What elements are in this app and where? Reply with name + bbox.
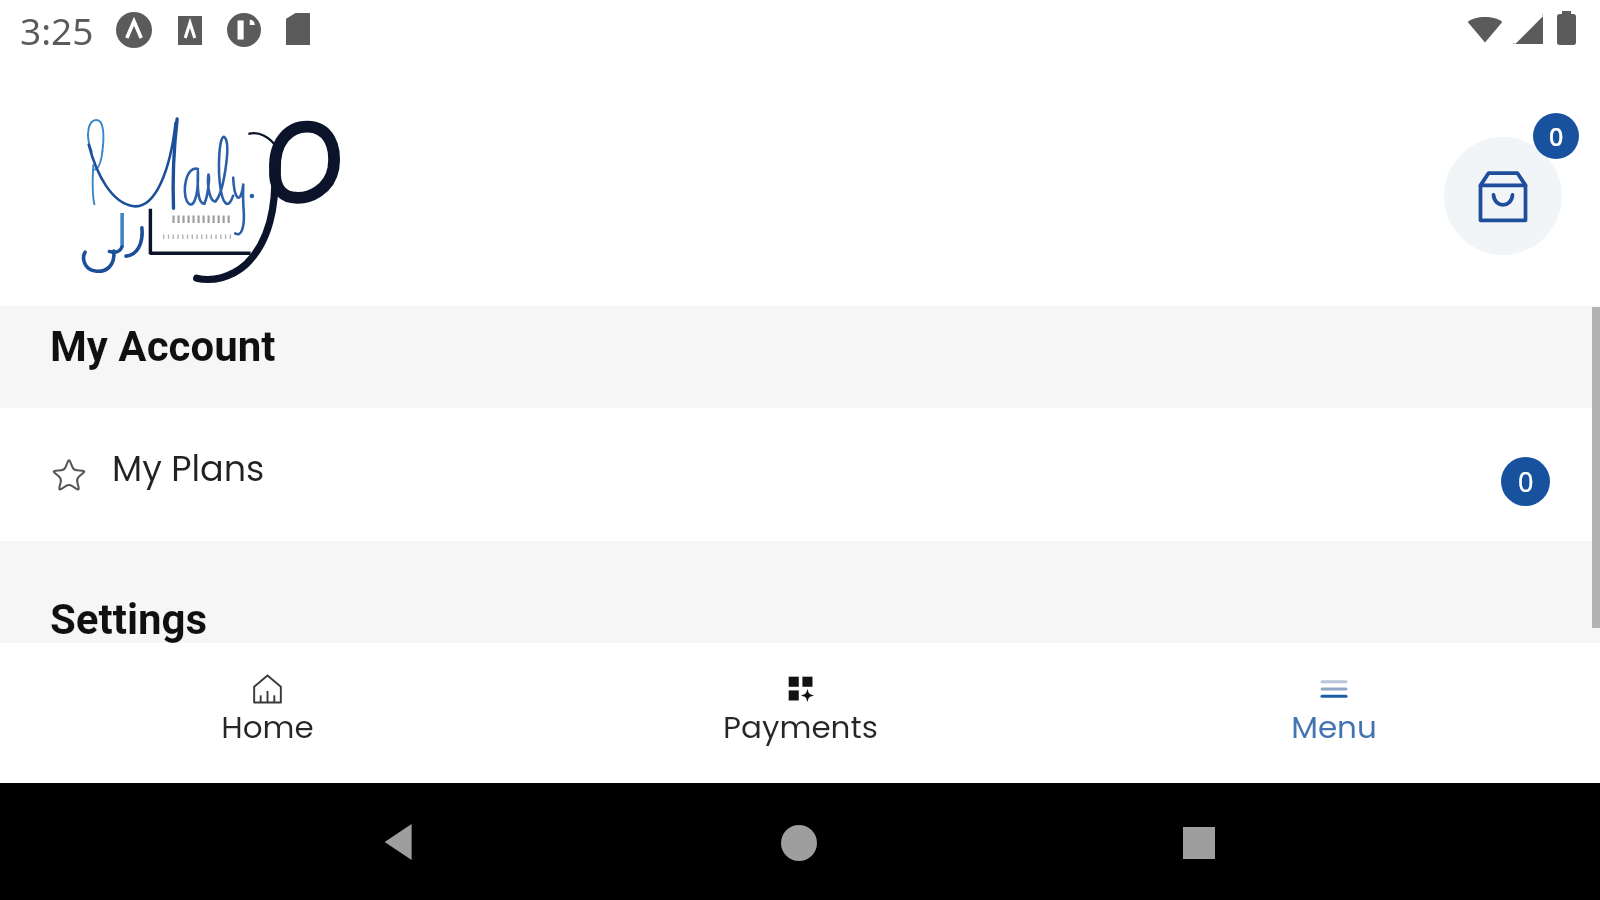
button[interactable]: Home (781, 825, 817, 861)
button[interactable]: Home (0, 643, 534, 783)
button[interactable]: Menu (1067, 643, 1600, 783)
staticText: 3:25 (20, 5, 94, 55)
button[interactable]: Back (381, 824, 417, 860)
button[interactable]: Payments (534, 643, 1067, 783)
button[interactable]: Cart (1444, 137, 1562, 255)
staticText: 0 (1549, 119, 1564, 153)
staticText: My Plans (112, 444, 265, 493)
other: Menu (1319, 674, 1349, 704)
staticText: Menu (1291, 705, 1377, 748)
button[interactable]: My Plans (0, 408, 1600, 541)
staticText: Home (221, 705, 314, 748)
other: Home (252, 673, 283, 704)
staticText: Payments (723, 705, 878, 748)
staticText: 0 (1518, 463, 1534, 500)
staticText: My Account (50, 322, 276, 371)
other: Payments (787, 675, 815, 703)
staticText: Settings (50, 595, 208, 644)
